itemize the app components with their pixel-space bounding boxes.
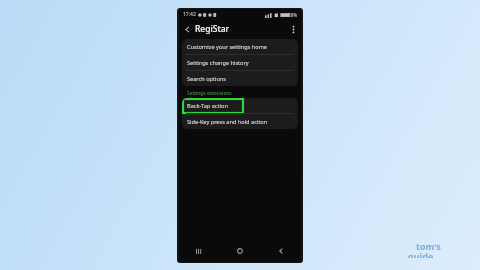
button[interactable]: Side-Key press and hold action — [182, 114, 298, 129]
staticText: 17:42 — [183, 11, 196, 18]
staticText: Back-Tap action — [187, 102, 228, 110]
staticText: Side-Key press and hold action — [187, 118, 268, 126]
staticText: guide — [408, 250, 434, 258]
button[interactable]: Back — [260, 240, 301, 262]
button[interactable]: More options — [285, 21, 301, 37]
staticText: RegiStar — [195, 23, 230, 35]
button[interactable]: Back — [179, 21, 195, 37]
button[interactable]: Recents — [179, 240, 219, 262]
staticText: Settings extensions — [187, 90, 232, 97]
button[interactable]: Search options — [182, 71, 298, 86]
staticText: Customize your settings home — [187, 43, 268, 51]
button[interactable]: Back-Tap action — [182, 98, 298, 113]
staticText: tom's — [416, 240, 441, 252]
staticText: Search options — [187, 75, 226, 83]
button[interactable]: Home — [219, 240, 260, 262]
staticText: Settings change history — [187, 59, 249, 67]
button[interactable]: Settings change history — [182, 55, 298, 70]
staticText: 88% — [288, 12, 297, 18]
button[interactable]: Customize your settings home — [182, 39, 298, 54]
